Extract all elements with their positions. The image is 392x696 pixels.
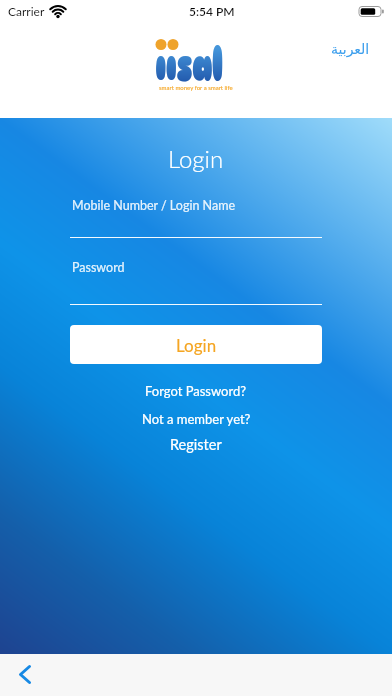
- staticText: Carrier: [8, 4, 45, 18]
- staticText: Login: [176, 335, 217, 355]
- staticText: العربية: [331, 41, 370, 57]
- staticText: Forgot Password?: [145, 383, 247, 399]
- staticText: Not a member yet?: [142, 411, 251, 427]
- staticText: smart money for a smart life: [159, 84, 233, 91]
- staticText: Register: [170, 436, 222, 453]
- staticText: Login: [168, 144, 224, 173]
- staticText: ıısal: [155, 36, 223, 93]
- staticText: Mobile Number / Login Name: [72, 198, 236, 213]
- staticText: 5:54 PM: [189, 4, 235, 18]
- staticText: Password: [72, 260, 125, 275]
